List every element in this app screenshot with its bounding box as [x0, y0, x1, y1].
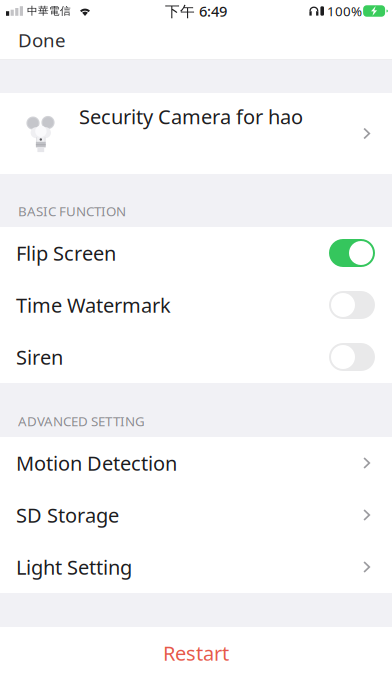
staticText: ADVANCED SETTING — [18, 412, 145, 430]
staticText: Light Setting — [16, 554, 132, 580]
staticText: BASIC FUNCTION — [18, 202, 126, 220]
button[interactable]: Security Camera for hao — [0, 93, 392, 174]
button[interactable]: SD Storage — [0, 489, 392, 541]
staticText: Security Camera for hao — [79, 103, 303, 130]
button[interactable]: Time Watermark — [0, 279, 392, 331]
staticText: Motion Detection — [16, 450, 177, 476]
button[interactable]: Light Setting — [0, 541, 392, 593]
button[interactable]: Flip Screen — [0, 227, 392, 279]
staticText: Flip Screen — [16, 240, 116, 266]
staticText: 中華電信 — [27, 4, 71, 17]
button[interactable]: Motion Detection — [0, 437, 392, 489]
staticText: Done — [18, 28, 66, 52]
staticText: SD Storage — [16, 502, 119, 528]
staticText: Siren — [16, 344, 63, 370]
staticText: Restart — [163, 640, 229, 666]
staticText: Time Watermark — [16, 292, 171, 318]
button[interactable]: Siren — [0, 331, 392, 383]
button[interactable]: Restart — [0, 627, 392, 679]
staticText: 下午 6:49 — [165, 1, 227, 21]
button[interactable]: Done — [0, 24, 80, 60]
staticText: 100% — [327, 2, 362, 20]
